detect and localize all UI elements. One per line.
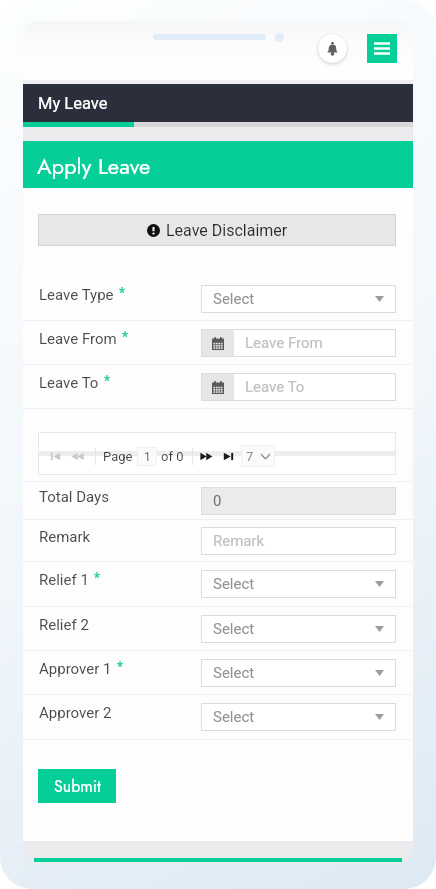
staticText: Leave From	[245, 334, 323, 352]
staticText: Leave From	[39, 330, 117, 348]
button[interactable]: Select	[201, 285, 396, 313]
button[interactable]: Notifications	[318, 34, 347, 63]
staticText: *	[104, 373, 111, 389]
staticText: *	[119, 285, 126, 301]
button[interactable]: Next page	[195, 445, 217, 467]
staticText: Select	[213, 620, 255, 638]
button[interactable]: First page	[44, 445, 66, 467]
staticText: *	[117, 659, 124, 675]
button[interactable]: Select	[201, 615, 396, 643]
staticText: Relief 2	[39, 616, 89, 634]
button[interactable]: 7	[241, 445, 275, 467]
button[interactable]: Leave Disclaimer	[38, 214, 396, 246]
staticText: of 0	[161, 449, 184, 464]
staticText: 1	[144, 450, 151, 464]
staticText: My Leave	[38, 94, 108, 113]
staticText: Page	[103, 449, 133, 464]
button[interactable]: Leave To	[201, 373, 396, 401]
staticText: Leave To	[39, 374, 99, 392]
staticText: Remark	[213, 532, 265, 550]
button[interactable]: Select	[201, 703, 396, 731]
staticText: Submit	[54, 775, 101, 798]
staticText: Leave To	[245, 378, 305, 396]
button[interactable]: Previous page	[66, 445, 88, 467]
staticText: 7	[246, 449, 254, 464]
button[interactable]: Last page	[217, 445, 239, 467]
button[interactable]: Leave From	[201, 329, 396, 357]
staticText: Leave Type	[39, 286, 114, 304]
staticText: *	[94, 570, 101, 586]
button[interactable]: Submit	[38, 769, 116, 803]
staticText: Select	[213, 664, 255, 682]
button[interactable]: Menu	[367, 34, 397, 63]
staticText: Select	[213, 708, 255, 726]
staticText: Remark	[39, 528, 91, 546]
button[interactable]: Select	[201, 659, 396, 687]
staticText: Leave Disclaimer	[166, 221, 288, 240]
staticText: 0	[213, 492, 222, 510]
button[interactable]: Select	[201, 570, 396, 598]
staticText: Total Days	[39, 488, 109, 506]
staticText: *	[122, 329, 129, 345]
button[interactable]: Remark	[201, 527, 396, 555]
staticText: Select	[213, 575, 255, 593]
staticText: Select	[213, 290, 255, 308]
staticText: Apply Leave	[37, 150, 151, 182]
staticText: Approver 2	[39, 704, 112, 722]
staticText: Approver 1	[39, 660, 112, 678]
staticText: Relief 1	[39, 571, 89, 589]
